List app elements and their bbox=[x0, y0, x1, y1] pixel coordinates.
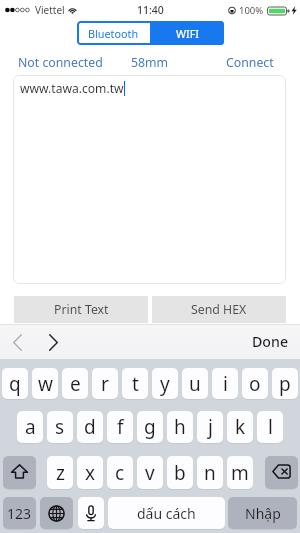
button[interactable]: q bbox=[2, 368, 28, 399]
staticText: b bbox=[174, 460, 186, 486]
staticText: www.tawa.com.tw bbox=[20, 80, 124, 96]
button[interactable]: f bbox=[107, 411, 133, 443]
button[interactable]: o bbox=[242, 368, 268, 399]
button[interactable]: Send HEX bbox=[152, 296, 286, 323]
button[interactable]: Nhập bbox=[228, 497, 297, 529]
staticText: q bbox=[9, 371, 21, 397]
button[interactable]: Backspace bbox=[265, 456, 298, 489]
button[interactable]: Print Text bbox=[14, 296, 148, 323]
staticText: t bbox=[132, 371, 139, 397]
button[interactable]: c bbox=[107, 456, 133, 489]
staticText: Print Text bbox=[54, 301, 109, 318]
button[interactable]: a bbox=[17, 411, 43, 443]
button[interactable]: Not connected bbox=[18, 54, 103, 71]
staticText: Bluetooth bbox=[88, 26, 139, 41]
button[interactable]: Next keyboard bbox=[40, 497, 73, 529]
button[interactable]: 123 bbox=[3, 497, 36, 529]
button[interactable]: v bbox=[137, 456, 163, 489]
button[interactable]: n bbox=[197, 456, 223, 489]
staticText: a bbox=[25, 414, 36, 440]
button[interactable]: s bbox=[47, 411, 73, 443]
staticText: m bbox=[231, 460, 249, 486]
button[interactable]: Previous field bbox=[4, 327, 30, 357]
staticText: w bbox=[38, 371, 53, 397]
staticText: x bbox=[85, 460, 96, 486]
staticText: d bbox=[84, 414, 96, 440]
button[interactable]: WIFI bbox=[150, 21, 224, 45]
button[interactable]: Done bbox=[252, 332, 289, 351]
staticText: 58mm bbox=[131, 54, 169, 71]
staticText: Send HEX bbox=[191, 301, 247, 318]
button[interactable]: u bbox=[182, 368, 208, 399]
button[interactable]: Connect bbox=[226, 54, 274, 71]
button[interactable]: k bbox=[227, 411, 253, 443]
staticText: Connect bbox=[226, 54, 274, 71]
button[interactable]: m bbox=[227, 456, 253, 489]
button[interactable]: Next field bbox=[40, 327, 66, 357]
staticText: g bbox=[144, 414, 156, 440]
staticText: Viettel bbox=[35, 3, 65, 17]
staticText: e bbox=[70, 371, 81, 397]
button[interactable]: Shift bbox=[3, 456, 36, 489]
staticText: Done bbox=[252, 332, 289, 351]
staticText: f bbox=[117, 414, 124, 440]
staticText: Nhập bbox=[245, 504, 281, 523]
staticText: 123 bbox=[7, 504, 32, 523]
button[interactable]: 58mm bbox=[131, 54, 169, 71]
button[interactable]: h bbox=[167, 411, 193, 443]
button[interactable]: l bbox=[257, 411, 283, 443]
button[interactable]: i bbox=[212, 368, 238, 399]
button[interactable]: dấu cách bbox=[108, 497, 225, 529]
staticText: p bbox=[279, 371, 291, 397]
button[interactable]: g bbox=[137, 411, 163, 443]
button[interactable]: z bbox=[47, 456, 73, 489]
staticText: s bbox=[55, 414, 65, 440]
staticText: n bbox=[204, 460, 216, 486]
staticText: 100% bbox=[239, 4, 264, 17]
button[interactable]: Dictation bbox=[78, 497, 104, 529]
staticText: o bbox=[249, 371, 261, 397]
button[interactable]: p bbox=[272, 368, 298, 399]
button[interactable]: e bbox=[62, 368, 88, 399]
button[interactable]: y bbox=[152, 368, 178, 399]
button[interactable]: r bbox=[92, 368, 118, 399]
staticText: l bbox=[268, 414, 273, 440]
staticText: i bbox=[223, 371, 228, 397]
staticText: k bbox=[235, 414, 246, 440]
staticText: WIFI bbox=[176, 26, 199, 41]
staticText: u bbox=[189, 371, 201, 397]
staticText: y bbox=[160, 371, 170, 397]
button[interactable]: b bbox=[167, 456, 193, 489]
button[interactable]: t bbox=[122, 368, 148, 399]
button[interactable]: Bluetooth bbox=[77, 21, 150, 45]
staticText: Not connected bbox=[18, 54, 103, 71]
button[interactable]: j bbox=[197, 411, 223, 443]
button[interactable]: x bbox=[77, 456, 103, 489]
staticText: v bbox=[145, 460, 155, 486]
staticText: z bbox=[56, 460, 65, 486]
button[interactable]: d bbox=[77, 411, 103, 443]
staticText: c bbox=[115, 460, 125, 486]
staticText: h bbox=[174, 414, 186, 440]
staticText: 11:40 bbox=[137, 3, 164, 17]
staticText: r bbox=[101, 371, 109, 397]
staticText: dấu cách bbox=[137, 504, 196, 523]
button[interactable]: w bbox=[32, 368, 58, 399]
staticText: j bbox=[208, 414, 213, 440]
